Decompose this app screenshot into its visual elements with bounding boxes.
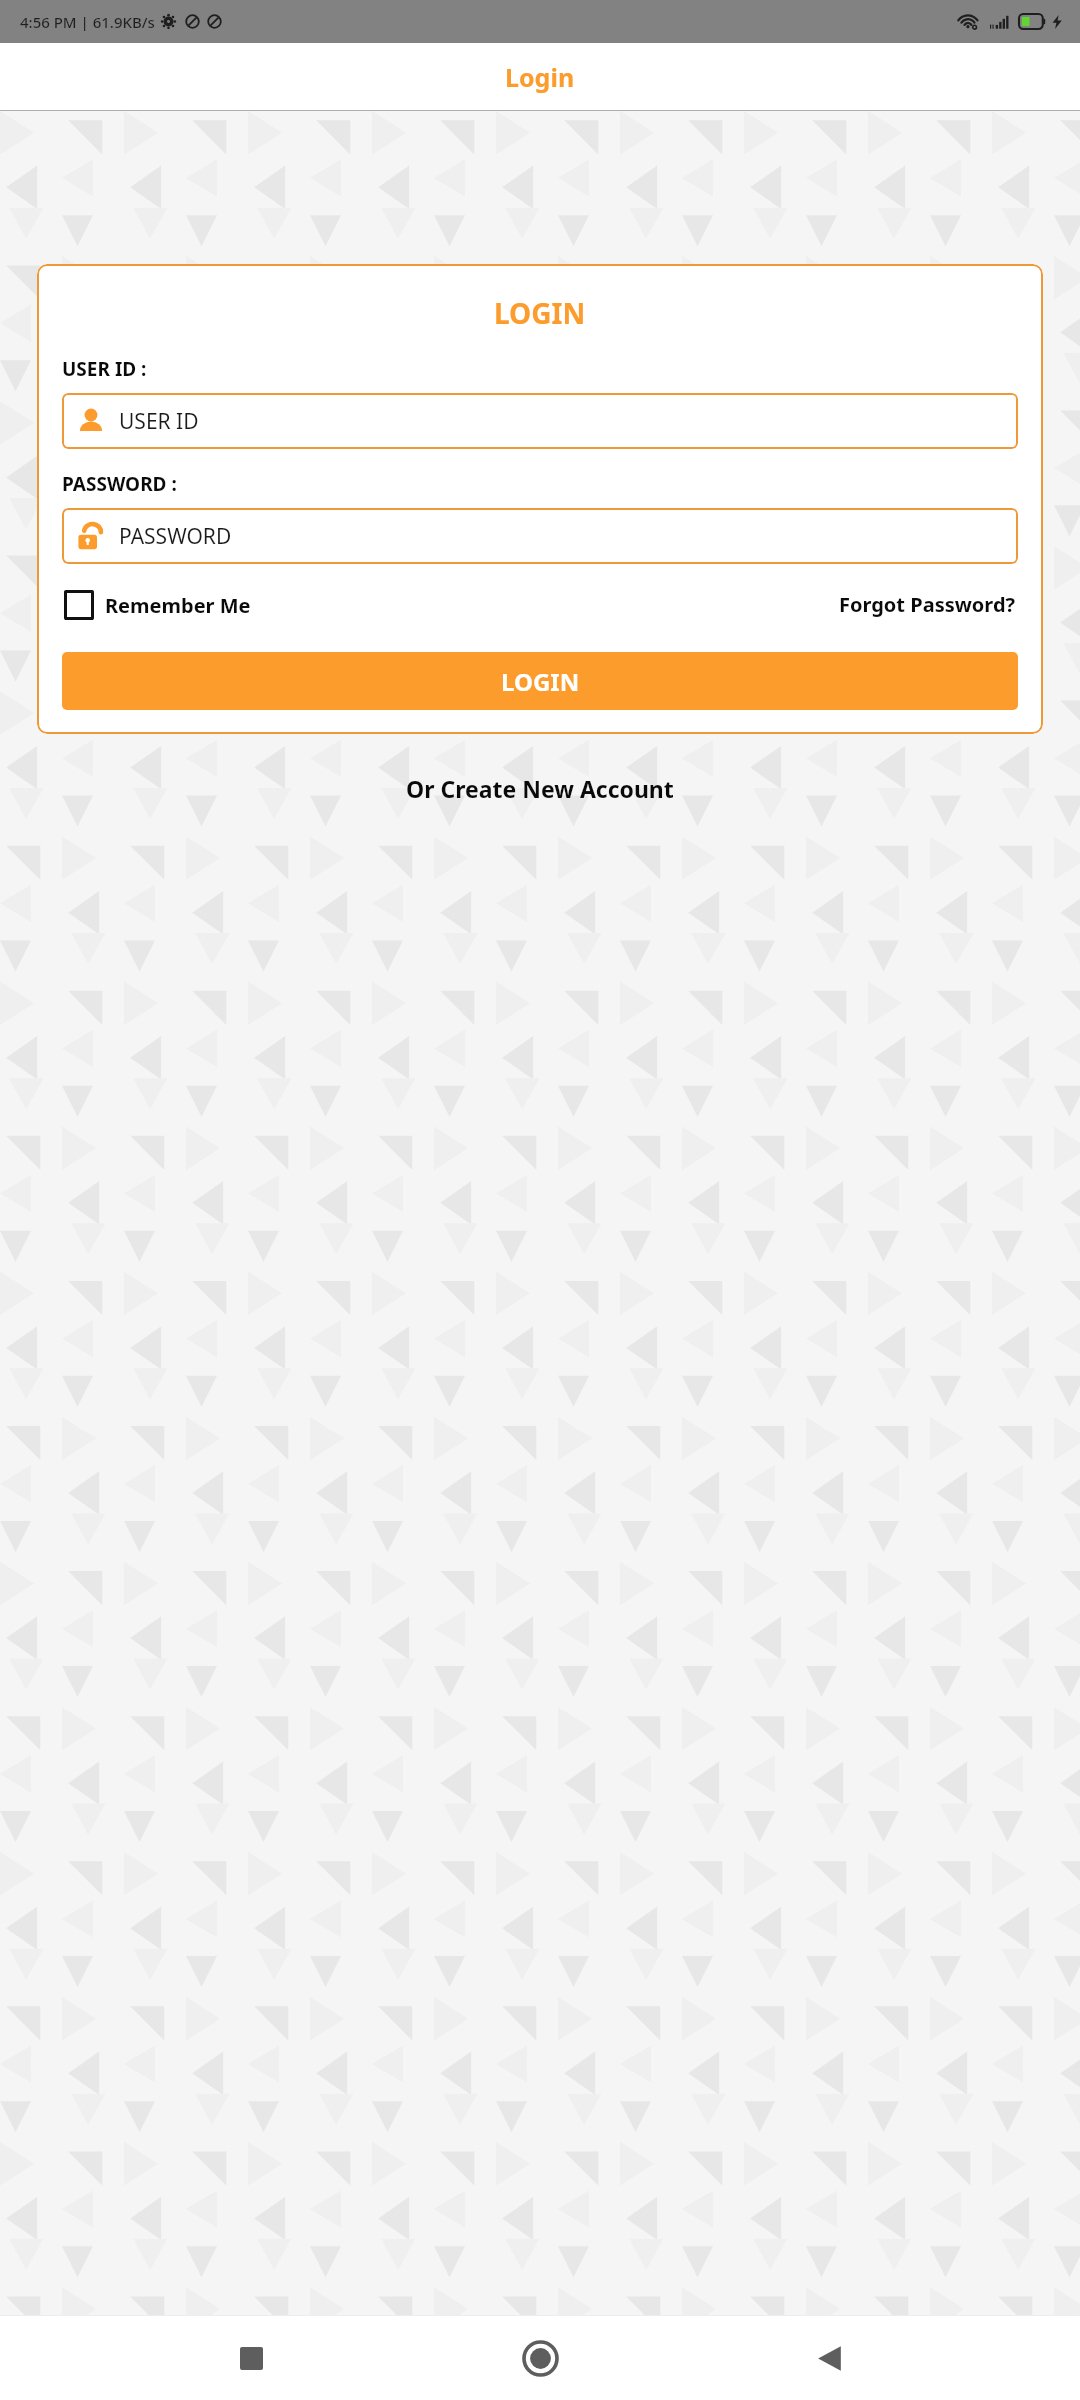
staticText: USER ID (119, 407, 199, 436)
staticText: Login (505, 60, 575, 94)
staticText: PASSWORD (119, 522, 232, 551)
staticText: Remember Me (105, 592, 251, 619)
button[interactable]: USER ID (62, 393, 1018, 449)
button[interactable]: LOGIN (62, 652, 1018, 710)
button[interactable]: Or Create New Account (396, 767, 684, 810)
button[interactable]: Remember Me (62, 586, 253, 624)
staticText: LOGIN (501, 665, 580, 698)
staticText: PASSWORD : (62, 471, 177, 497)
staticText: Or Create New Account (406, 773, 674, 804)
staticText: Forgot Password? (839, 591, 1016, 618)
button[interactable]: Home (502, 2320, 578, 2396)
button[interactable]: Forgot Password? (837, 585, 1018, 624)
staticText: 4:56 PM | 61.9KB/s (20, 12, 155, 32)
staticText: USER ID : (62, 356, 147, 382)
button[interactable]: PASSWORD (62, 508, 1018, 564)
button[interactable]: Recent apps (213, 2320, 289, 2396)
button[interactable]: Back (791, 2320, 867, 2396)
staticText: LOGIN (494, 294, 586, 332)
